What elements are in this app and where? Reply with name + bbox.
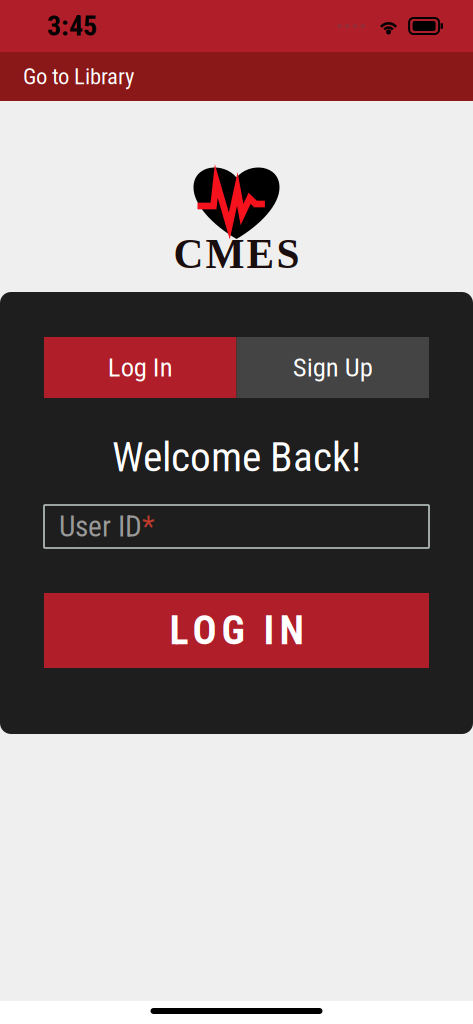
staticText: LOG IN — [169, 607, 303, 654]
staticText: CMES — [173, 231, 299, 277]
button[interactable]: Log In — [44, 337, 236, 398]
staticText: Log In — [108, 352, 173, 383]
staticText: User ID — [59, 509, 142, 544]
staticText: * — [142, 509, 155, 544]
staticText: Welcome Back! — [112, 433, 361, 481]
button[interactable]: Go to Library — [0, 52, 146, 101]
button[interactable]: LOG IN — [44, 593, 429, 668]
staticText: Sign Up — [293, 352, 373, 383]
staticText: 3:45 — [47, 10, 97, 42]
button[interactable]: Sign Up — [236, 337, 429, 398]
staticText: Go to Library — [23, 63, 134, 90]
